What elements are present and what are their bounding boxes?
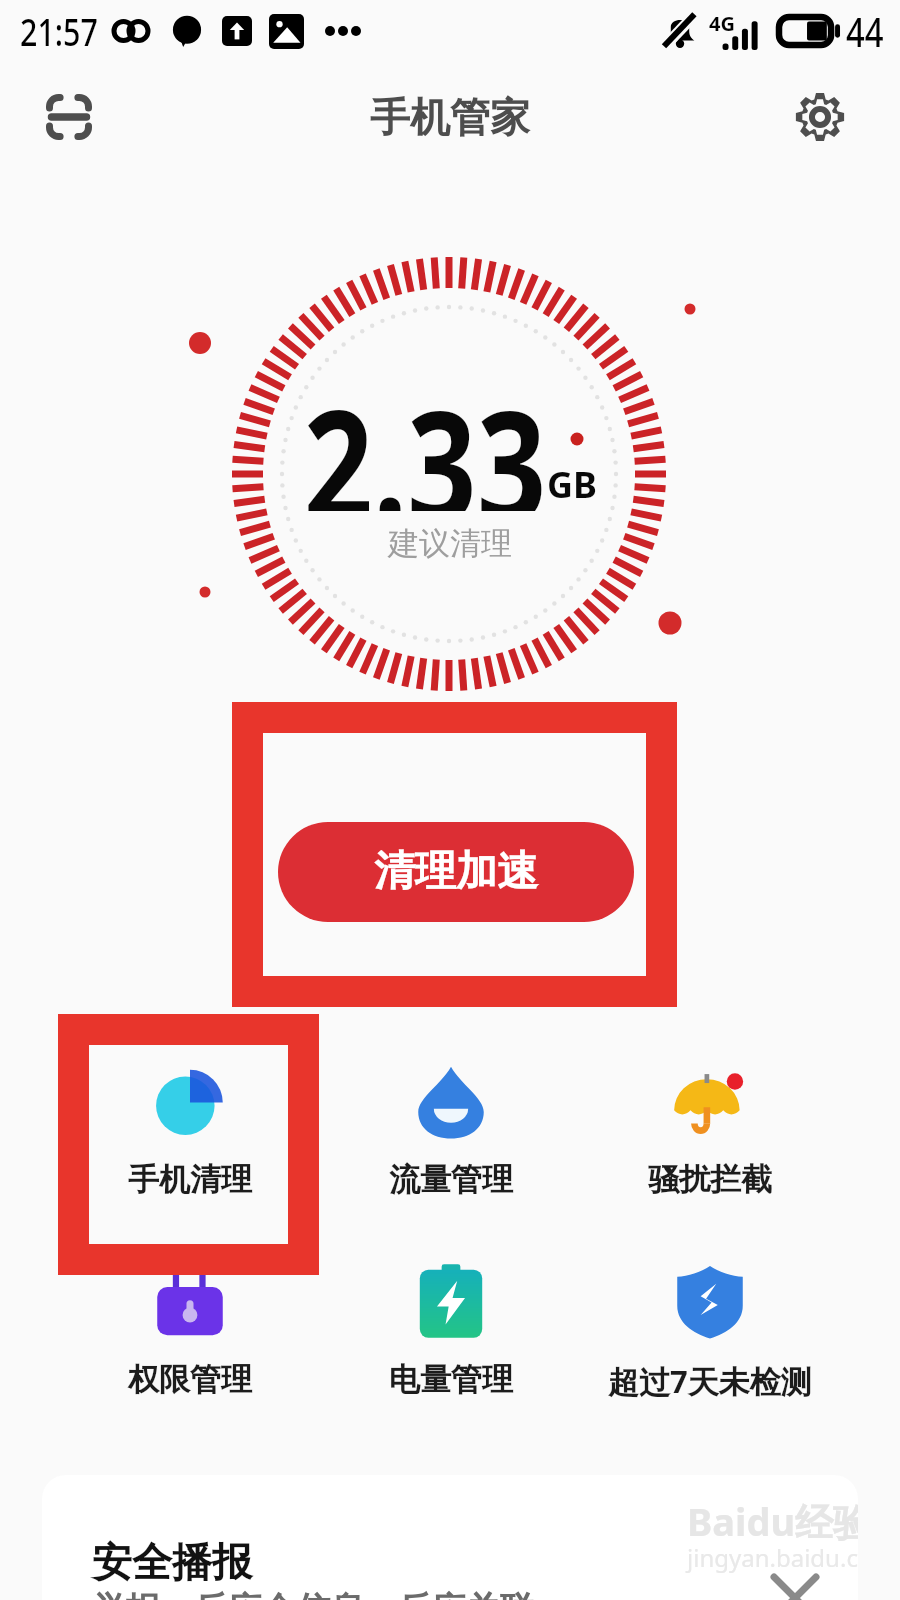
button[interactable]: Close — [760, 1563, 830, 1600]
staticText: 4G — [709, 10, 735, 37]
button[interactable]: 流量管理 — [321, 1050, 581, 1210]
button[interactable]: 清理加速 — [278, 822, 634, 922]
staticText: 建议清理 — [0, 524, 900, 563]
button[interactable]: 超过7天未检测 — [580, 1250, 840, 1410]
staticText: 44 — [846, 4, 895, 58]
staticText: 举报、反应金信息、反应关联 — [92, 1588, 534, 1600]
staticText: 骚扰拦截 — [648, 1160, 772, 1199]
staticText: 流量管理 — [389, 1160, 513, 1199]
staticText: 超过7天未检测 — [608, 1360, 812, 1402]
staticText: 电量管理 — [389, 1360, 513, 1399]
staticText: GB — [547, 460, 598, 509]
button[interactable]: 安全播报 — [42, 1475, 858, 1600]
staticText: 清理加速 — [374, 846, 538, 898]
button[interactable]: 电量管理 — [321, 1250, 581, 1410]
staticText: jingyan.baidu.com — [687, 1541, 858, 1574]
button[interactable]: 手机清理 — [60, 1050, 320, 1210]
staticText: Baidu经验 — [687, 1495, 858, 1547]
button[interactable]: 骚扰拦截 — [580, 1050, 840, 1210]
staticText: 2.33 — [303, 359, 547, 511]
button[interactable]: Scan — [28, 76, 110, 158]
staticText: 权限管理 — [128, 1360, 252, 1399]
staticText: 手机清理 — [128, 1160, 252, 1199]
button[interactable]: 权限管理 — [60, 1250, 320, 1410]
staticText: 手机管家 — [370, 92, 530, 142]
button[interactable]: Settings — [780, 77, 860, 157]
staticText: 21:57 — [20, 5, 100, 57]
staticText: 安全播报 — [92, 1537, 252, 1587]
